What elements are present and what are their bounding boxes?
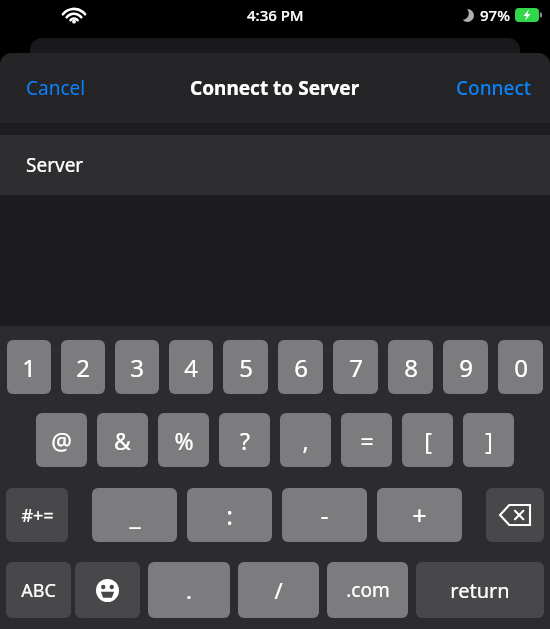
staticText: Connect	[456, 75, 532, 101]
staticText: 8	[404, 351, 418, 384]
button[interactable]: 7	[333, 340, 378, 394]
staticText: -	[320, 498, 329, 532]
button[interactable]: =	[341, 413, 392, 467]
button[interactable]: Backspace	[486, 488, 544, 542]
staticText: .	[186, 575, 192, 605]
staticText: return	[450, 577, 510, 604]
button[interactable]: #+=	[6, 488, 68, 542]
button[interactable]: 5	[223, 340, 268, 394]
staticText: 7	[349, 351, 363, 384]
staticText: Server	[26, 152, 84, 178]
button[interactable]: 4	[169, 340, 213, 394]
button[interactable]: 9	[443, 340, 488, 394]
button[interactable]: [	[402, 413, 453, 467]
button[interactable]: -	[282, 488, 367, 542]
staticText: %	[174, 425, 194, 456]
staticText: 6	[294, 351, 308, 384]
staticText: 3	[130, 351, 144, 384]
staticText: [	[424, 425, 432, 456]
button[interactable]: 0	[498, 340, 543, 394]
staticText: =	[360, 425, 374, 456]
button[interactable]: 6	[278, 340, 323, 394]
staticText: 1	[22, 351, 36, 384]
staticText: #+=	[21, 503, 54, 528]
button[interactable]: Connect	[438, 63, 550, 113]
staticText: .com	[346, 577, 390, 603]
staticText: ?	[240, 425, 250, 456]
button[interactable]: .com	[327, 562, 408, 618]
button[interactable]: 2	[61, 340, 105, 394]
button[interactable]: Server	[0, 135, 550, 195]
staticText: 5	[239, 351, 253, 384]
button[interactable]: return	[416, 562, 544, 618]
staticText: Connect to Server	[190, 75, 360, 101]
button[interactable]: Cancel	[0, 63, 112, 113]
button[interactable]: ,	[280, 413, 331, 467]
staticText: :	[226, 498, 233, 532]
button[interactable]: ABC	[6, 562, 71, 618]
button[interactable]: %	[158, 413, 209, 467]
button[interactable]: +	[377, 488, 462, 542]
staticText: ABC	[21, 578, 56, 603]
button[interactable]: 3	[115, 340, 159, 394]
staticText: 2	[76, 351, 90, 384]
staticText: ]	[485, 425, 493, 456]
button[interactable]: ?	[219, 413, 270, 467]
button[interactable]: @	[36, 413, 87, 467]
staticText: _	[129, 498, 141, 532]
staticText: ,	[302, 425, 309, 456]
staticText: @	[51, 425, 72, 456]
staticText: 0	[514, 351, 528, 384]
button[interactable]: .	[148, 562, 230, 618]
staticText: &	[114, 425, 131, 456]
button[interactable]: &	[97, 413, 148, 467]
staticText: Cancel	[26, 75, 86, 101]
staticText: 4:36 PM	[247, 5, 304, 25]
staticText: 9	[459, 351, 473, 384]
button[interactable]: 1	[7, 340, 51, 394]
staticText: 4	[184, 351, 198, 384]
button[interactable]: Emoji keyboard	[75, 562, 140, 618]
button[interactable]: ]	[463, 413, 514, 467]
staticText: /	[274, 575, 283, 605]
button[interactable]: 8	[388, 340, 433, 394]
button[interactable]: :	[187, 488, 272, 542]
button[interactable]: /	[238, 562, 319, 618]
staticText: 97%	[480, 5, 510, 25]
button[interactable]: _	[92, 488, 177, 542]
staticText: +	[412, 498, 427, 532]
